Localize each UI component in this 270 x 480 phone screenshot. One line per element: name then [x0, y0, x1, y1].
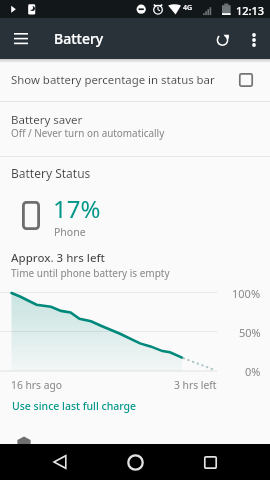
button[interactable] — [0, 102, 270, 156]
staticText: Battery saver — [11, 112, 83, 128]
staticText: Show battery percentage in status bar — [11, 72, 215, 88]
staticText: Time until phone battery is empty — [11, 266, 170, 280]
button[interactable]: More options — [238, 24, 269, 55]
button[interactable] — [0, 59, 270, 101]
button[interactable]: Recent apps — [192, 444, 228, 480]
staticText: 0% — [245, 364, 261, 379]
staticText: 12:13 — [236, 3, 265, 18]
staticText: Phone — [54, 225, 86, 239]
staticText: 100% — [232, 286, 261, 301]
button[interactable] — [0, 398, 270, 418]
staticText: Battery — [54, 29, 104, 48]
staticText: 3 hrs left — [174, 378, 217, 392]
staticText: 4G — [183, 3, 193, 13]
button[interactable]: Refresh — [207, 24, 238, 55]
staticText: Approx. 3 hrs left — [11, 250, 106, 266]
staticText: 17% — [53, 192, 101, 225]
staticText: Battery Status — [11, 165, 91, 181]
staticText: Use since last full charge — [12, 399, 137, 413]
button[interactable]: Back — [42, 444, 78, 480]
staticText: 16 hrs ago — [11, 378, 63, 392]
button[interactable]: Navigation menu — [5, 23, 36, 54]
button[interactable]: Home — [117, 444, 153, 480]
staticText: 50% — [239, 325, 261, 340]
staticText: Off / Never turn on automatically — [11, 126, 165, 139]
